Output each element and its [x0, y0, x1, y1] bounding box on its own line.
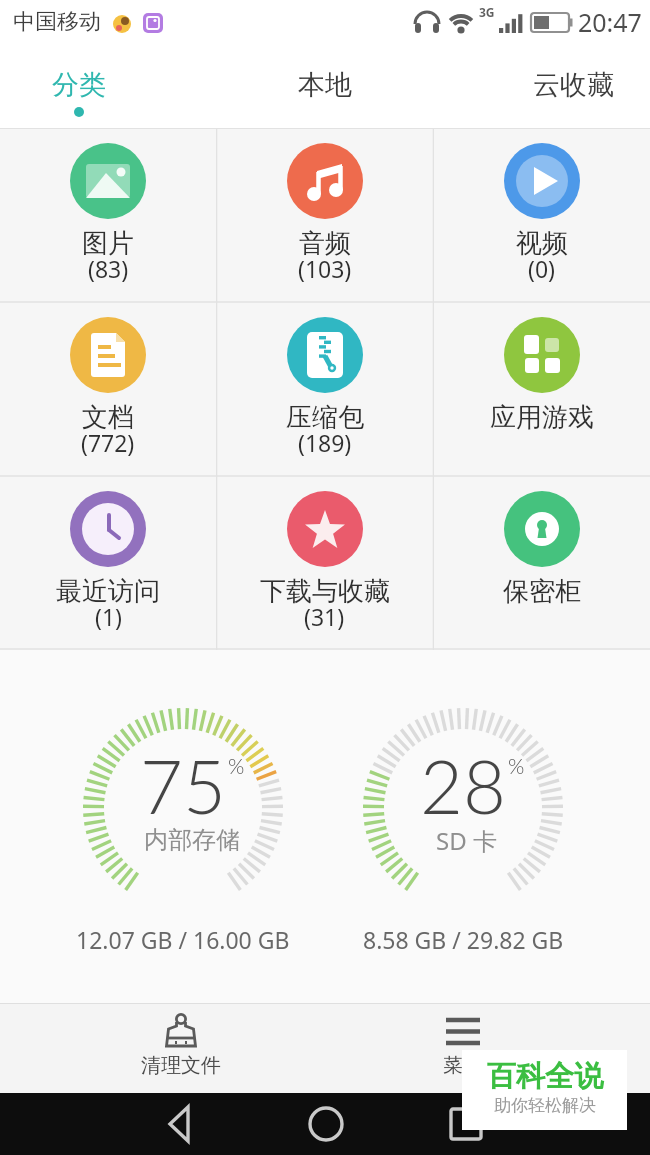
button[interactable]: 文档 — [0, 302, 216, 476]
staticText: 菜单 — [443, 1053, 483, 1078]
button[interactable]: 云收藏 — [525, 60, 622, 110]
button[interactable]: 图片 — [0, 128, 216, 302]
button[interactable]: 应用游戏 — [433, 302, 650, 476]
button[interactable]: 菜单 — [403, 1003, 523, 1093]
staticText: 分类 — [52, 68, 106, 102]
staticText: 本地 — [298, 68, 352, 102]
staticText: 助你轻松解决 — [494, 1095, 596, 1116]
button[interactable]: 音频 — [216, 128, 433, 302]
staticText: 下载与收藏 — [260, 575, 390, 608]
staticText: 百科全说 — [487, 1058, 603, 1095]
staticText: SD 卡 — [436, 824, 497, 856]
staticText: 压缩包 — [286, 401, 364, 434]
staticText: (0) — [528, 253, 555, 284]
staticText: (189) — [298, 427, 352, 458]
button[interactable]: 下载与收藏 — [216, 476, 433, 650]
staticText: % — [228, 753, 245, 778]
button[interactable] — [436, 1094, 496, 1154]
staticText: 应用游戏 — [490, 401, 594, 434]
staticText: % — [508, 753, 525, 778]
staticText: 12.07 GB / 16.00 GB — [76, 924, 290, 955]
staticText: 8.58 GB / 29.82 GB — [363, 924, 564, 955]
staticText: (103) — [298, 253, 352, 284]
staticText: 图片 — [82, 227, 134, 260]
staticText: 中国移动 — [13, 8, 101, 36]
button[interactable]: 保密柜 — [433, 476, 650, 650]
button[interactable]: 本地 — [290, 60, 360, 110]
staticText: 内部存储 — [144, 825, 240, 855]
staticText: 视频 — [516, 227, 568, 260]
button[interactable] — [296, 1094, 356, 1154]
staticText: (31) — [304, 601, 345, 632]
button[interactable]: 最近访问 — [0, 476, 216, 650]
staticText: 最近访问 — [56, 575, 160, 608]
staticText: 云收藏 — [533, 68, 614, 102]
staticText: 3G — [479, 4, 495, 20]
staticText: (83) — [88, 253, 129, 284]
button[interactable]: 压缩包 — [216, 302, 433, 476]
staticText: (1) — [95, 601, 122, 632]
button[interactable]: 视频 — [433, 128, 650, 302]
staticText: (772) — [81, 427, 135, 458]
staticText: 清理文件 — [141, 1053, 221, 1078]
button[interactable]: 分类 — [44, 60, 114, 110]
staticText: 20:47 — [578, 5, 642, 39]
button[interactable] — [150, 1094, 210, 1154]
staticText: 保密柜 — [503, 575, 581, 608]
staticText: 75 — [140, 741, 226, 830]
staticText: 文档 — [82, 401, 134, 434]
staticText: 音频 — [299, 227, 351, 260]
button[interactable]: 清理文件 — [121, 1003, 241, 1093]
staticText: 28 — [420, 741, 506, 830]
